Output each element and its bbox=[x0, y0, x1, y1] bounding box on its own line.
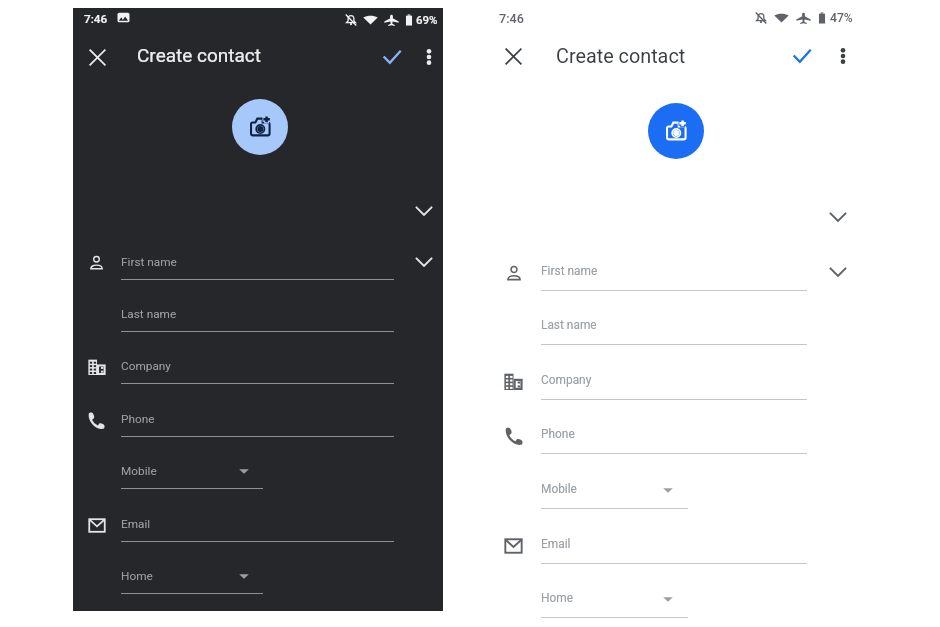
button[interactable]: Expand name fields bbox=[409, 247, 439, 277]
button[interactable]: Save bbox=[785, 39, 819, 73]
button[interactable]: Phone bbox=[496, 413, 807, 459]
button[interactable]: Expand bbox=[823, 202, 853, 232]
button[interactable]: Save bbox=[375, 40, 409, 74]
button[interactable]: More options bbox=[826, 39, 860, 73]
staticText: Last name bbox=[121, 307, 177, 321]
staticText: Company bbox=[541, 373, 592, 387]
button[interactable]: Phone bbox=[80, 397, 394, 443]
button[interactable]: Add contact photo bbox=[648, 103, 704, 159]
staticText: Mobile bbox=[121, 464, 157, 478]
button[interactable]: Last name bbox=[496, 304, 807, 350]
staticText: Company bbox=[121, 359, 171, 373]
staticText: Email bbox=[541, 537, 571, 551]
button[interactable]: Mobile bbox=[496, 468, 688, 514]
button[interactable]: More options bbox=[412, 40, 446, 74]
button[interactable]: Email bbox=[80, 502, 394, 548]
button[interactable]: Email bbox=[496, 523, 807, 569]
staticText: Home bbox=[121, 569, 153, 583]
button[interactable]: Mobile bbox=[80, 449, 263, 495]
button[interactable]: Last name bbox=[80, 292, 394, 338]
staticText: 69% bbox=[416, 13, 438, 26]
button[interactable]: Home bbox=[80, 554, 263, 600]
button[interactable]: First name bbox=[496, 250, 807, 296]
staticText: Create contact bbox=[556, 45, 686, 68]
staticText: 47% bbox=[830, 11, 853, 25]
button[interactable]: Company bbox=[496, 359, 807, 405]
button[interactable]: Close bbox=[80, 40, 114, 74]
button[interactable]: First name bbox=[80, 240, 394, 286]
button[interactable]: Close bbox=[496, 39, 530, 73]
staticText: 7:46 bbox=[84, 12, 108, 26]
staticText: Mobile bbox=[541, 482, 577, 496]
button[interactable]: Expand name fields bbox=[823, 257, 853, 287]
staticText: Home bbox=[541, 591, 573, 605]
button[interactable]: Add contact photo bbox=[232, 99, 288, 155]
button[interactable]: Company bbox=[80, 344, 394, 390]
staticText: 7:46 bbox=[499, 11, 524, 26]
staticText: First name bbox=[541, 264, 598, 278]
staticText: Create contact bbox=[137, 44, 262, 66]
staticText: Phone bbox=[121, 412, 155, 426]
staticText: First name bbox=[121, 255, 177, 269]
staticText: Last name bbox=[541, 318, 597, 332]
button[interactable]: Home bbox=[496, 577, 688, 623]
button[interactable]: Expand bbox=[409, 196, 439, 226]
staticText: Phone bbox=[541, 427, 575, 441]
staticText: Email bbox=[121, 517, 151, 531]
